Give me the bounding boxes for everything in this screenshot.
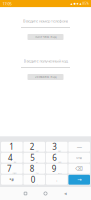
button[interactable]: Send xyxy=(68,175,90,185)
staticText: 6 xyxy=(52,152,57,163)
button[interactable]: 6 xyxy=(46,153,67,163)
button[interactable]: 2 xyxy=(23,142,45,152)
staticText: ● xyxy=(73,2,75,5)
staticText: 4 xyxy=(8,152,13,163)
staticText: Введите полученный код xyxy=(23,58,67,63)
button[interactable]: 4 xyxy=(1,153,23,163)
staticText: MNO xyxy=(58,161,61,163)
button[interactable]: Backspace xyxy=(68,164,90,174)
button[interactable]: Next xyxy=(68,153,90,163)
button[interactable]: Period xyxy=(46,175,67,185)
staticText: → xyxy=(77,177,81,183)
staticText: *# xyxy=(9,177,14,182)
staticText: 5 xyxy=(30,152,35,163)
button[interactable]: Dash xyxy=(68,142,90,152)
staticText: 9 xyxy=(52,163,57,174)
button[interactable]: ПОЛУЧИТЬ КОД xyxy=(27,34,63,40)
staticText: PQRS xyxy=(13,172,17,174)
button[interactable]: 9 xyxy=(46,164,67,174)
staticText: ⌫ xyxy=(75,166,83,172)
button[interactable]: 5 xyxy=(23,153,45,163)
button[interactable]: Back xyxy=(55,187,75,200)
button[interactable]: Home xyxy=(35,187,55,200)
staticText: 2 xyxy=(30,141,35,152)
staticText: 8 xyxy=(30,163,35,174)
staticText: след xyxy=(76,156,82,159)
staticText: TUV xyxy=(36,172,39,174)
staticText: . xyxy=(56,177,57,182)
staticText: JKL xyxy=(36,161,38,163)
staticText: ◆ xyxy=(76,2,78,5)
staticText: ◂ xyxy=(64,190,67,197)
button[interactable]: 7 xyxy=(1,164,23,174)
button[interactable]: 1 xyxy=(1,142,23,152)
staticText: 1 xyxy=(9,141,14,152)
staticText: ОТПРАВИТЬ КОД xyxy=(34,75,56,79)
staticText: 17:05 xyxy=(2,1,11,6)
staticText: ПОЛУЧИТЬ КОД xyxy=(34,35,56,39)
button[interactable]: Recent apps xyxy=(15,187,35,200)
staticText: 85% xyxy=(82,2,88,5)
button[interactable]: 3 xyxy=(46,142,67,152)
button[interactable]: 8 xyxy=(23,164,45,174)
button[interactable]: Symbols xyxy=(1,175,23,185)
staticText: ▴ xyxy=(70,1,72,6)
staticText: Введите номер телефона xyxy=(23,18,68,23)
staticText: + xyxy=(37,183,38,185)
staticText: DEF xyxy=(58,150,61,152)
staticText: 7 xyxy=(7,163,12,174)
staticText: GHI xyxy=(14,161,16,163)
staticText: WXYZ xyxy=(58,172,62,174)
staticText: — xyxy=(77,143,82,150)
staticText: ABC xyxy=(36,150,39,152)
staticText: 0 xyxy=(31,174,36,185)
button[interactable]: ОТПРАВИТЬ КОД xyxy=(27,74,63,80)
staticText: ▲ xyxy=(79,2,81,5)
button[interactable]: 0 xyxy=(23,175,45,185)
staticText: 3 xyxy=(52,141,57,152)
